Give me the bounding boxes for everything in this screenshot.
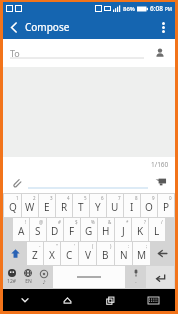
- staticText: L: [154, 224, 160, 238]
- button[interactable]: 4: [56, 194, 72, 217]
- staticText: /: [161, 219, 163, 225]
- staticText: G: [85, 224, 93, 238]
- button[interactable]: 3: [39, 194, 55, 217]
- button[interactable]: &: [98, 218, 114, 241]
- staticText: E: [44, 200, 50, 214]
- staticText: 5: [84, 195, 87, 201]
- staticText: *: [126, 219, 129, 225]
- staticText: U: [111, 200, 119, 214]
- button[interactable]: 7: [107, 194, 123, 217]
- staticText: O: [145, 200, 153, 214]
- button[interactable]: Attach: [8, 174, 24, 190]
- staticText: 9: [152, 195, 155, 201]
- staticText: M: [137, 248, 147, 262]
- button[interactable]: /: [149, 218, 165, 241]
- staticText: T: [78, 200, 84, 214]
- staticText: PM: [165, 6, 172, 12]
- button[interactable]: -: [27, 242, 43, 265]
- staticText: 1: [16, 195, 19, 201]
- staticText: F: [69, 224, 75, 238]
- staticText: %: [91, 219, 95, 225]
- button[interactable]: ': [61, 242, 78, 265]
- button[interactable]: #: [47, 218, 63, 241]
- button[interactable]: Settings: [36, 266, 52, 288]
- button[interactable]: 6: [90, 194, 106, 217]
- staticText: 86%: [123, 5, 135, 13]
- staticText: C: [66, 248, 73, 262]
- staticText: V: [85, 248, 91, 262]
- button[interactable]: [28, 175, 148, 189]
- button[interactable]: (: [79, 242, 96, 265]
- staticText: -: [39, 243, 41, 249]
- staticText: Q: [9, 200, 17, 214]
- staticText: D: [51, 224, 59, 238]
- staticText: !: [25, 219, 27, 225]
- button[interactable]: ?: [132, 218, 148, 241]
- button[interactable]: :: [115, 242, 132, 265]
- staticText: .: [135, 278, 137, 285]
- staticText: 6:08: [150, 4, 163, 13]
- button[interactable]: More options: [151, 15, 175, 39]
- staticText: Y: [95, 200, 101, 214]
- staticText: #: [58, 219, 61, 225]
- staticText: $: [75, 219, 78, 225]
- button[interactable]: Back: [3, 16, 25, 38]
- staticText: ): [110, 243, 112, 249]
- staticText: (: [92, 243, 94, 249]
- button[interactable]: Shift: [4, 242, 26, 265]
- staticText: W: [25, 200, 35, 214]
- button[interactable]: Language: [20, 266, 35, 288]
- staticText: R: [61, 200, 68, 214]
- button[interactable]: 1: [4, 194, 21, 217]
- staticText: 3: [50, 195, 53, 201]
- button[interactable]: !: [13, 218, 29, 241]
- staticText: ;: [146, 243, 148, 249]
- staticText: @: [39, 219, 44, 225]
- button[interactable]: %: [81, 218, 97, 241]
- staticText: EN: [25, 278, 32, 285]
- staticText: K: [137, 224, 144, 238]
- button[interactable]: 2: [22, 194, 38, 217]
- staticText: Compose: [25, 20, 70, 34]
- staticText: 6: [101, 195, 104, 201]
- staticText: 7: [118, 195, 121, 201]
- staticText: 12#: [7, 278, 16, 285]
- button[interactable]: Add contact: [152, 45, 168, 61]
- button[interactable]: *: [115, 218, 131, 241]
- staticText: J: [122, 224, 125, 238]
- staticText: To: [10, 47, 20, 59]
- staticText: A: [18, 224, 25, 238]
- button[interactable]: Enter: [146, 266, 174, 288]
- button[interactable]: Home: [46, 289, 89, 311]
- button[interactable]: Recent apps: [89, 289, 132, 311]
- staticText: 0: [169, 195, 172, 201]
- button[interactable]: @: [30, 218, 46, 241]
- button[interactable]: ": [44, 242, 60, 265]
- button[interactable]: Send: [152, 173, 170, 191]
- staticText: 8: [135, 195, 138, 201]
- button[interactable]: Hide keyboard: [3, 289, 46, 311]
- button[interactable]: ;: [133, 242, 150, 265]
- staticText: 4: [67, 195, 70, 201]
- staticText: ?: [144, 219, 146, 225]
- button[interactable]: Backspace: [151, 242, 174, 265]
- button[interactable]: 0: [158, 194, 174, 217]
- staticText: Z: [32, 248, 38, 262]
- button[interactable]: Space: [53, 266, 125, 288]
- staticText: N: [120, 248, 128, 262]
- button[interactable]: 8: [124, 194, 140, 217]
- staticText: X: [49, 248, 55, 262]
- staticText: S: [35, 224, 41, 238]
- button[interactable]: 9: [141, 194, 157, 217]
- button[interactable]: Keyboard switcher: [132, 289, 175, 311]
- button[interactable]: 5: [73, 194, 89, 217]
- button[interactable]: $: [64, 218, 80, 241]
- button[interactable]: Symbols: [4, 266, 19, 288]
- staticText: :: [128, 243, 130, 249]
- staticText: P: [163, 200, 170, 214]
- staticText: B: [102, 248, 109, 262]
- button[interactable]: ): [97, 242, 114, 265]
- staticText: ': [74, 243, 76, 249]
- button[interactable]: Voice input: [126, 266, 145, 288]
- staticText: ": [56, 243, 58, 249]
